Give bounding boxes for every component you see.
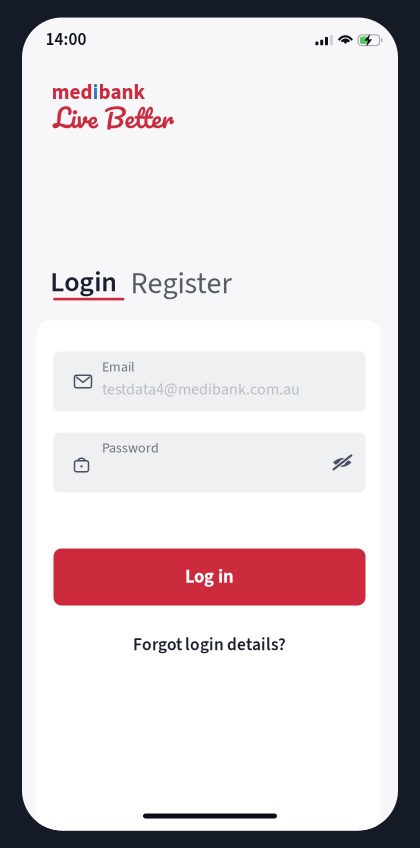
staticText: 14:00	[45, 27, 86, 52]
staticText: testdata4@medibank.com.au	[102, 378, 300, 401]
button[interactable]: Password	[53, 432, 365, 492]
staticText: Register	[131, 262, 232, 305]
button[interactable]: Register	[125, 256, 238, 311]
staticText: Forgot login details?	[133, 632, 286, 657]
staticText: Live Better	[53, 96, 173, 139]
button[interactable]: Email	[53, 351, 365, 411]
button[interactable]: Log in	[53, 548, 365, 605]
staticText: Login	[50, 262, 117, 302]
staticText: med	[51, 77, 92, 107]
button[interactable]: Login	[44, 256, 123, 308]
staticText: Email	[102, 357, 135, 377]
staticText: Password	[102, 438, 159, 458]
staticText: bank	[98, 77, 145, 107]
button[interactable]: Forgot login details?	[53, 632, 365, 658]
staticText: i	[92, 77, 98, 107]
staticText: Log in	[185, 564, 234, 590]
